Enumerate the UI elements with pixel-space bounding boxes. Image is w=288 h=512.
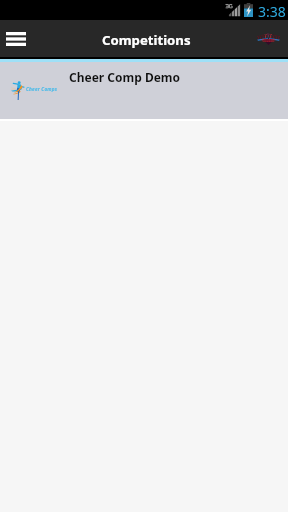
button[interactable]: Event logo [257,32,280,45]
staticText: 3:38 [258,2,286,21]
button[interactable]: Cheer Comp Demo [0,62,288,119]
button[interactable]: Open navigation menu [0,20,31,57]
staticText: Cheer Comps [26,86,58,92]
staticText: Cheer Comp Demo [69,69,181,85]
staticText: Competitions [102,31,191,49]
